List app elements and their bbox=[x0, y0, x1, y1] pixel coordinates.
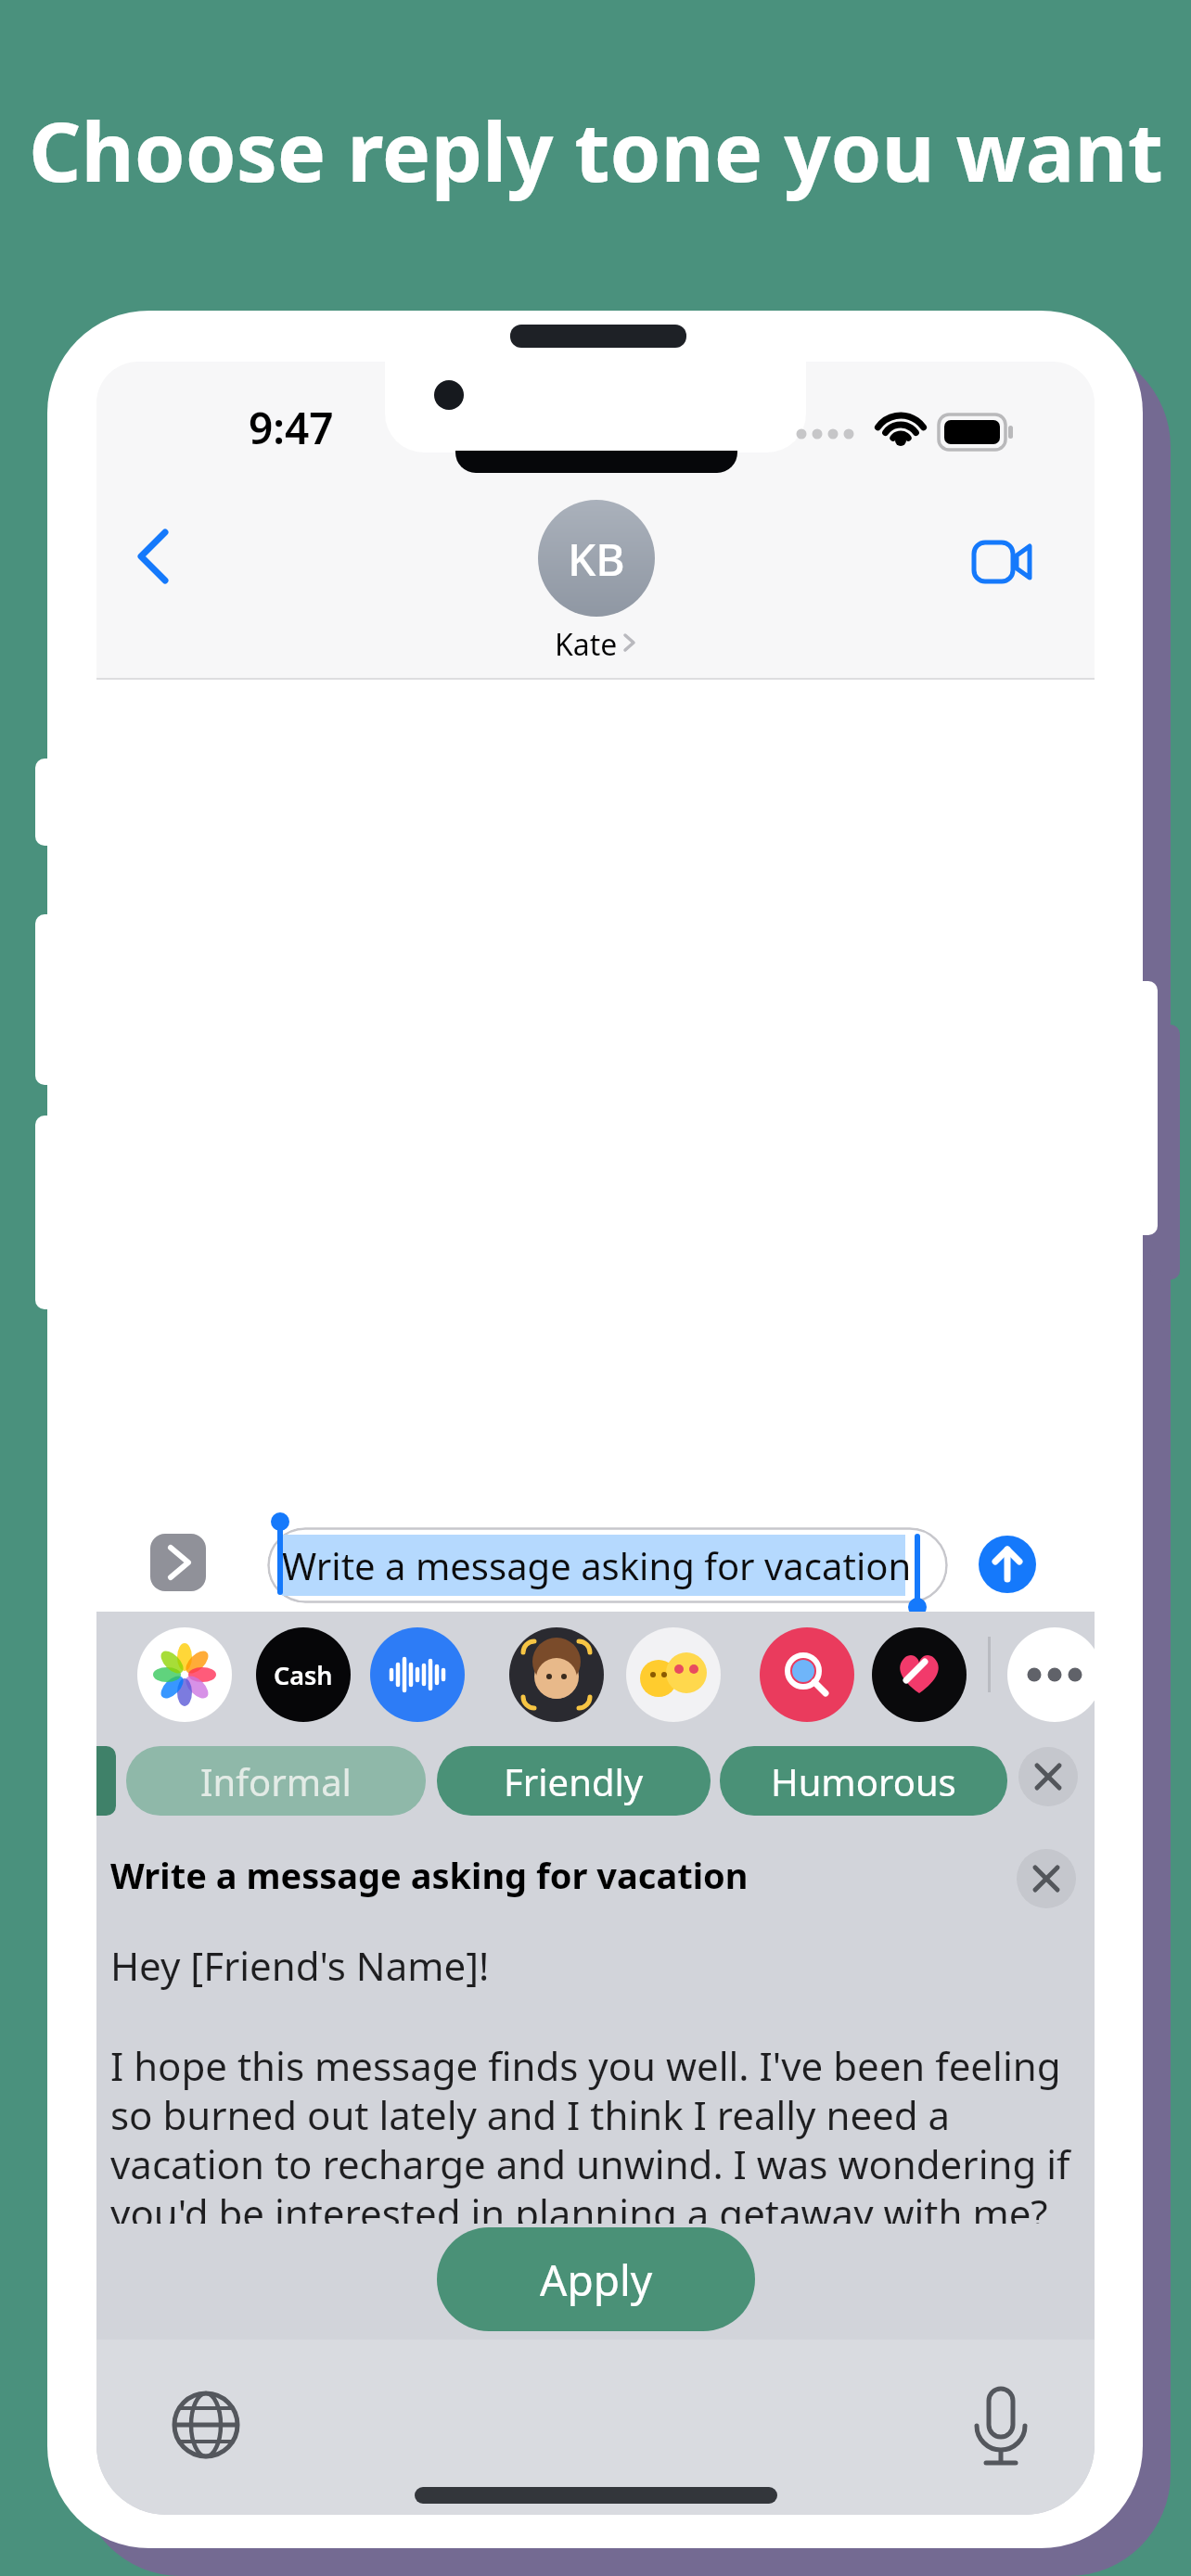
staticText: Hey [Friend's Name]! bbox=[110, 1939, 490, 1992]
button[interactable] bbox=[150, 1534, 206, 1591]
button[interactable] bbox=[979, 1536, 1036, 1593]
button[interactable]: Humorous bbox=[720, 1746, 1007, 1816]
staticText: I hope this message finds you well. I've… bbox=[110, 2039, 1061, 2092]
staticText: KB bbox=[568, 529, 625, 589]
button[interactable] bbox=[970, 531, 1035, 591]
staticText: Write a message asking for vacation bbox=[282, 1540, 912, 1590]
button[interactable] bbox=[509, 1627, 604, 1722]
button[interactable] bbox=[626, 1627, 721, 1722]
button[interactable] bbox=[124, 519, 189, 593]
button[interactable] bbox=[1017, 1849, 1076, 1908]
staticText: Friendly bbox=[504, 1756, 644, 1806]
button[interactable]: Informal bbox=[126, 1746, 426, 1816]
button[interactable] bbox=[964, 2385, 1038, 2473]
button[interactable] bbox=[1007, 1627, 1095, 1722]
button[interactable]: KB bbox=[538, 500, 655, 617]
staticText: Cash bbox=[274, 1658, 333, 1692]
button[interactable]: Apply bbox=[437, 2227, 755, 2331]
button[interactable] bbox=[370, 1627, 465, 1722]
staticText: 9:47 bbox=[249, 399, 334, 445]
button[interactable] bbox=[760, 1627, 854, 1722]
button[interactable] bbox=[169, 2388, 243, 2462]
staticText: vacation to recharge and unwind. I was w… bbox=[110, 2137, 1070, 2190]
staticText: Informal bbox=[200, 1756, 352, 1806]
staticText: Humorous bbox=[771, 1756, 956, 1806]
button[interactable] bbox=[872, 1627, 967, 1722]
button[interactable]: Write a message asking for vacation bbox=[267, 1527, 948, 1603]
button[interactable]: Friendly bbox=[437, 1746, 711, 1816]
staticText: Apply bbox=[540, 2251, 653, 2309]
button[interactable]: Cash bbox=[256, 1627, 351, 1722]
staticText: Kate bbox=[555, 624, 618, 661]
staticText: Choose reply tone you want bbox=[29, 95, 1163, 206]
button[interactable] bbox=[137, 1627, 232, 1722]
button[interactable] bbox=[1018, 1747, 1078, 1806]
staticText: Write a message asking for vacation bbox=[110, 1851, 749, 1899]
staticText: you'd be interested in planning a getawa… bbox=[110, 2187, 1048, 2239]
staticText: so burned out lately and I think I reall… bbox=[110, 2088, 951, 2141]
